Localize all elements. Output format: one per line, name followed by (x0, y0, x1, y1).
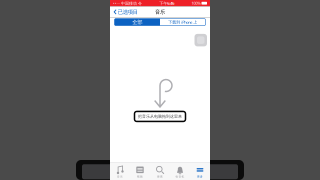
button[interactable]: 已选项目 (110, 6, 141, 17)
button[interactable]: 更多 (190, 165, 210, 178)
staticText: 全部 (132, 19, 142, 25)
staticText: 下午6:46 (159, 0, 174, 6)
staticText: 搜索 (157, 175, 163, 178)
button[interactable]: 下载到 iPhone 上 (160, 19, 205, 26)
staticText: 音乐 (155, 9, 165, 15)
button[interactable]: 全部 (114, 19, 160, 26)
button[interactable]: 搜索 (150, 165, 170, 178)
staticText: ••ᐧᐧᐧ 中国移动 令 (113, 0, 142, 6)
staticText: 把音乐从电脑拖到这里来 (138, 114, 182, 119)
button[interactable]: 收音机 (170, 165, 190, 178)
staticText: 100% (191, 0, 200, 6)
staticText: 收音机 (175, 175, 184, 178)
button[interactable]: 音乐 (110, 165, 130, 178)
staticText: 音乐 (117, 175, 123, 178)
staticText: 下载到 iPhone 上 (168, 19, 197, 25)
staticText: 已选项目 (118, 9, 138, 15)
staticText: 视频 (137, 175, 143, 178)
button[interactable]: 视频 (130, 165, 150, 178)
button[interactable]: Shuffle (194, 34, 207, 46)
staticText: 更多 (197, 175, 203, 178)
